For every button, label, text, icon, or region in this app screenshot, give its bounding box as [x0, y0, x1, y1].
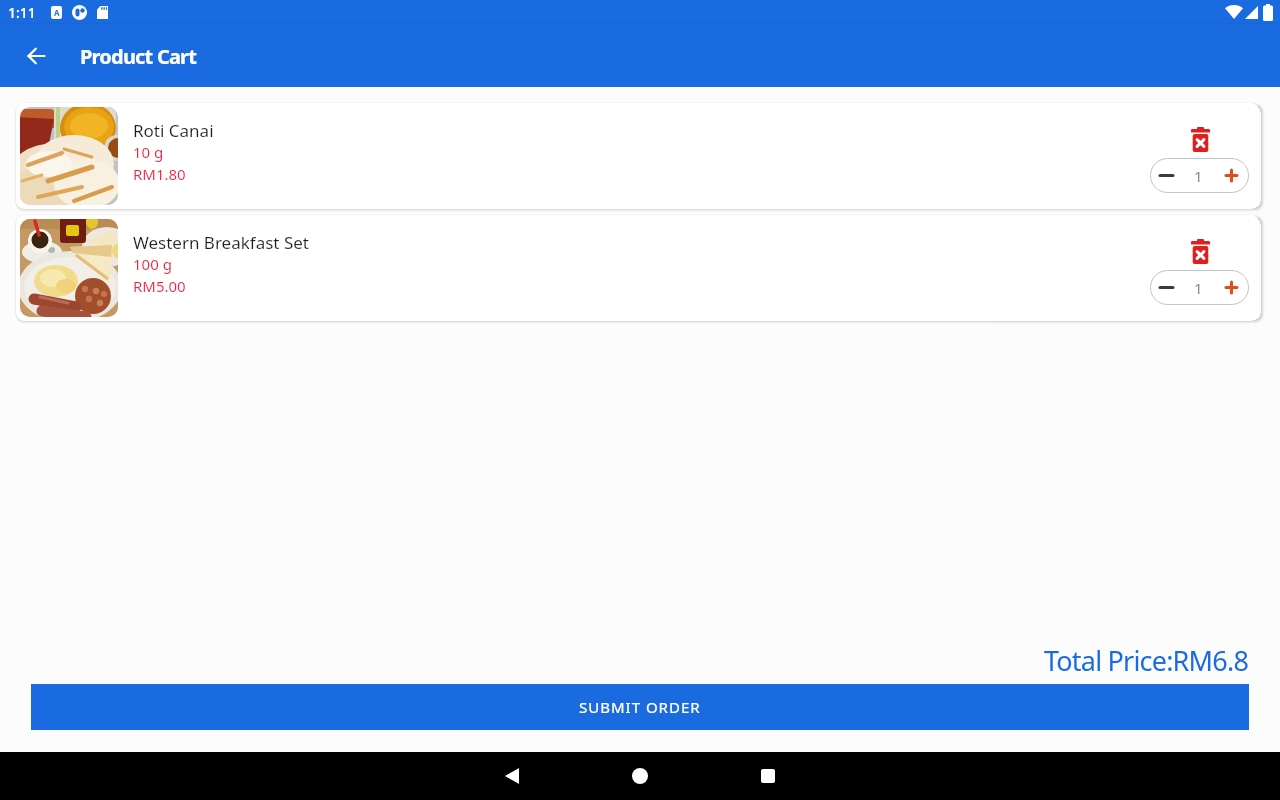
button[interactable]: [1187, 238, 1213, 264]
button[interactable]: [1150, 270, 1183, 305]
button[interactable]: Roti Canai: [16, 103, 1259, 209]
staticText: RM5.00: [133, 276, 186, 296]
button[interactable]: Western Breakfast Set: [16, 215, 1259, 321]
staticText: 100 g: [133, 254, 172, 274]
staticText: A: [54, 7, 60, 18]
staticText: Roti Canai: [133, 119, 214, 142]
staticText: RM1.80: [133, 164, 186, 184]
button[interactable]: [20, 40, 52, 72]
button[interactable]: [496, 760, 528, 792]
button[interactable]: [1150, 158, 1183, 193]
staticText: Product Cart: [80, 43, 197, 70]
button[interactable]: [1187, 126, 1213, 152]
staticText: 1: [1194, 278, 1203, 298]
button[interactable]: [1213, 158, 1249, 193]
button[interactable]: [752, 760, 784, 792]
button[interactable]: SUBMIT ORDER: [31, 684, 1249, 730]
staticText: SUBMIT ORDER: [579, 697, 701, 717]
staticText: Total Price:RM6.8: [1044, 642, 1249, 679]
button[interactable]: [624, 760, 656, 792]
staticText: 1:11: [8, 3, 36, 22]
staticText: 1: [1194, 166, 1203, 186]
staticText: Western Breakfast Set: [133, 231, 309, 254]
staticText: 10 g: [133, 142, 164, 162]
button[interactable]: [1213, 270, 1249, 305]
